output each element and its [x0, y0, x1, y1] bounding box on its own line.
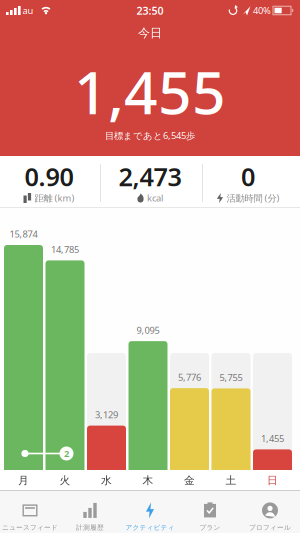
staticText: 1,455: [261, 432, 284, 445]
staticText: 14,785: [51, 243, 79, 256]
staticText: 火: [59, 474, 70, 487]
staticText: 1,455: [74, 52, 226, 130]
staticText: 計測履歴: [76, 523, 104, 532]
staticText: 40%: [253, 4, 271, 17]
staticText: 今日: [138, 26, 162, 40]
staticText: 活動時間 (分): [226, 192, 279, 204]
staticText: 水: [101, 474, 112, 487]
staticText: 目標まであと6,545歩: [105, 129, 195, 142]
staticText: 15,874: [9, 228, 37, 240]
button[interactable]: プロフィール: [237, 498, 300, 533]
staticText: 距離 (km): [34, 192, 74, 204]
staticText: 3,129: [95, 408, 118, 421]
staticText: プロフィール: [249, 523, 291, 532]
staticText: 0: [241, 160, 255, 193]
staticText: ニュースフィード: [2, 523, 58, 532]
staticText: au: [22, 4, 33, 17]
button[interactable]: アクティビティ: [117, 498, 183, 533]
button[interactable]: 計測履歴: [57, 498, 123, 533]
staticText: 月: [18, 474, 29, 487]
staticText: 23:50: [136, 3, 163, 18]
staticText: 木: [142, 474, 153, 487]
staticText: 5,776: [178, 371, 201, 383]
button[interactable]: ニュースフィード: [0, 498, 63, 533]
staticText: 日: [267, 474, 278, 487]
staticText: 2,473: [118, 160, 181, 193]
staticText: 0.90: [24, 160, 73, 193]
staticText: 土: [225, 474, 236, 487]
staticText: 9,095: [136, 324, 159, 336]
staticText: アクティビティ: [125, 523, 174, 532]
staticText: 5,755: [219, 371, 242, 384]
staticText: プラン: [199, 523, 220, 532]
button[interactable]: プラン: [177, 498, 243, 533]
staticText: kcal: [147, 192, 163, 204]
staticText: 金: [184, 474, 195, 487]
staticText: 2: [64, 447, 69, 460]
